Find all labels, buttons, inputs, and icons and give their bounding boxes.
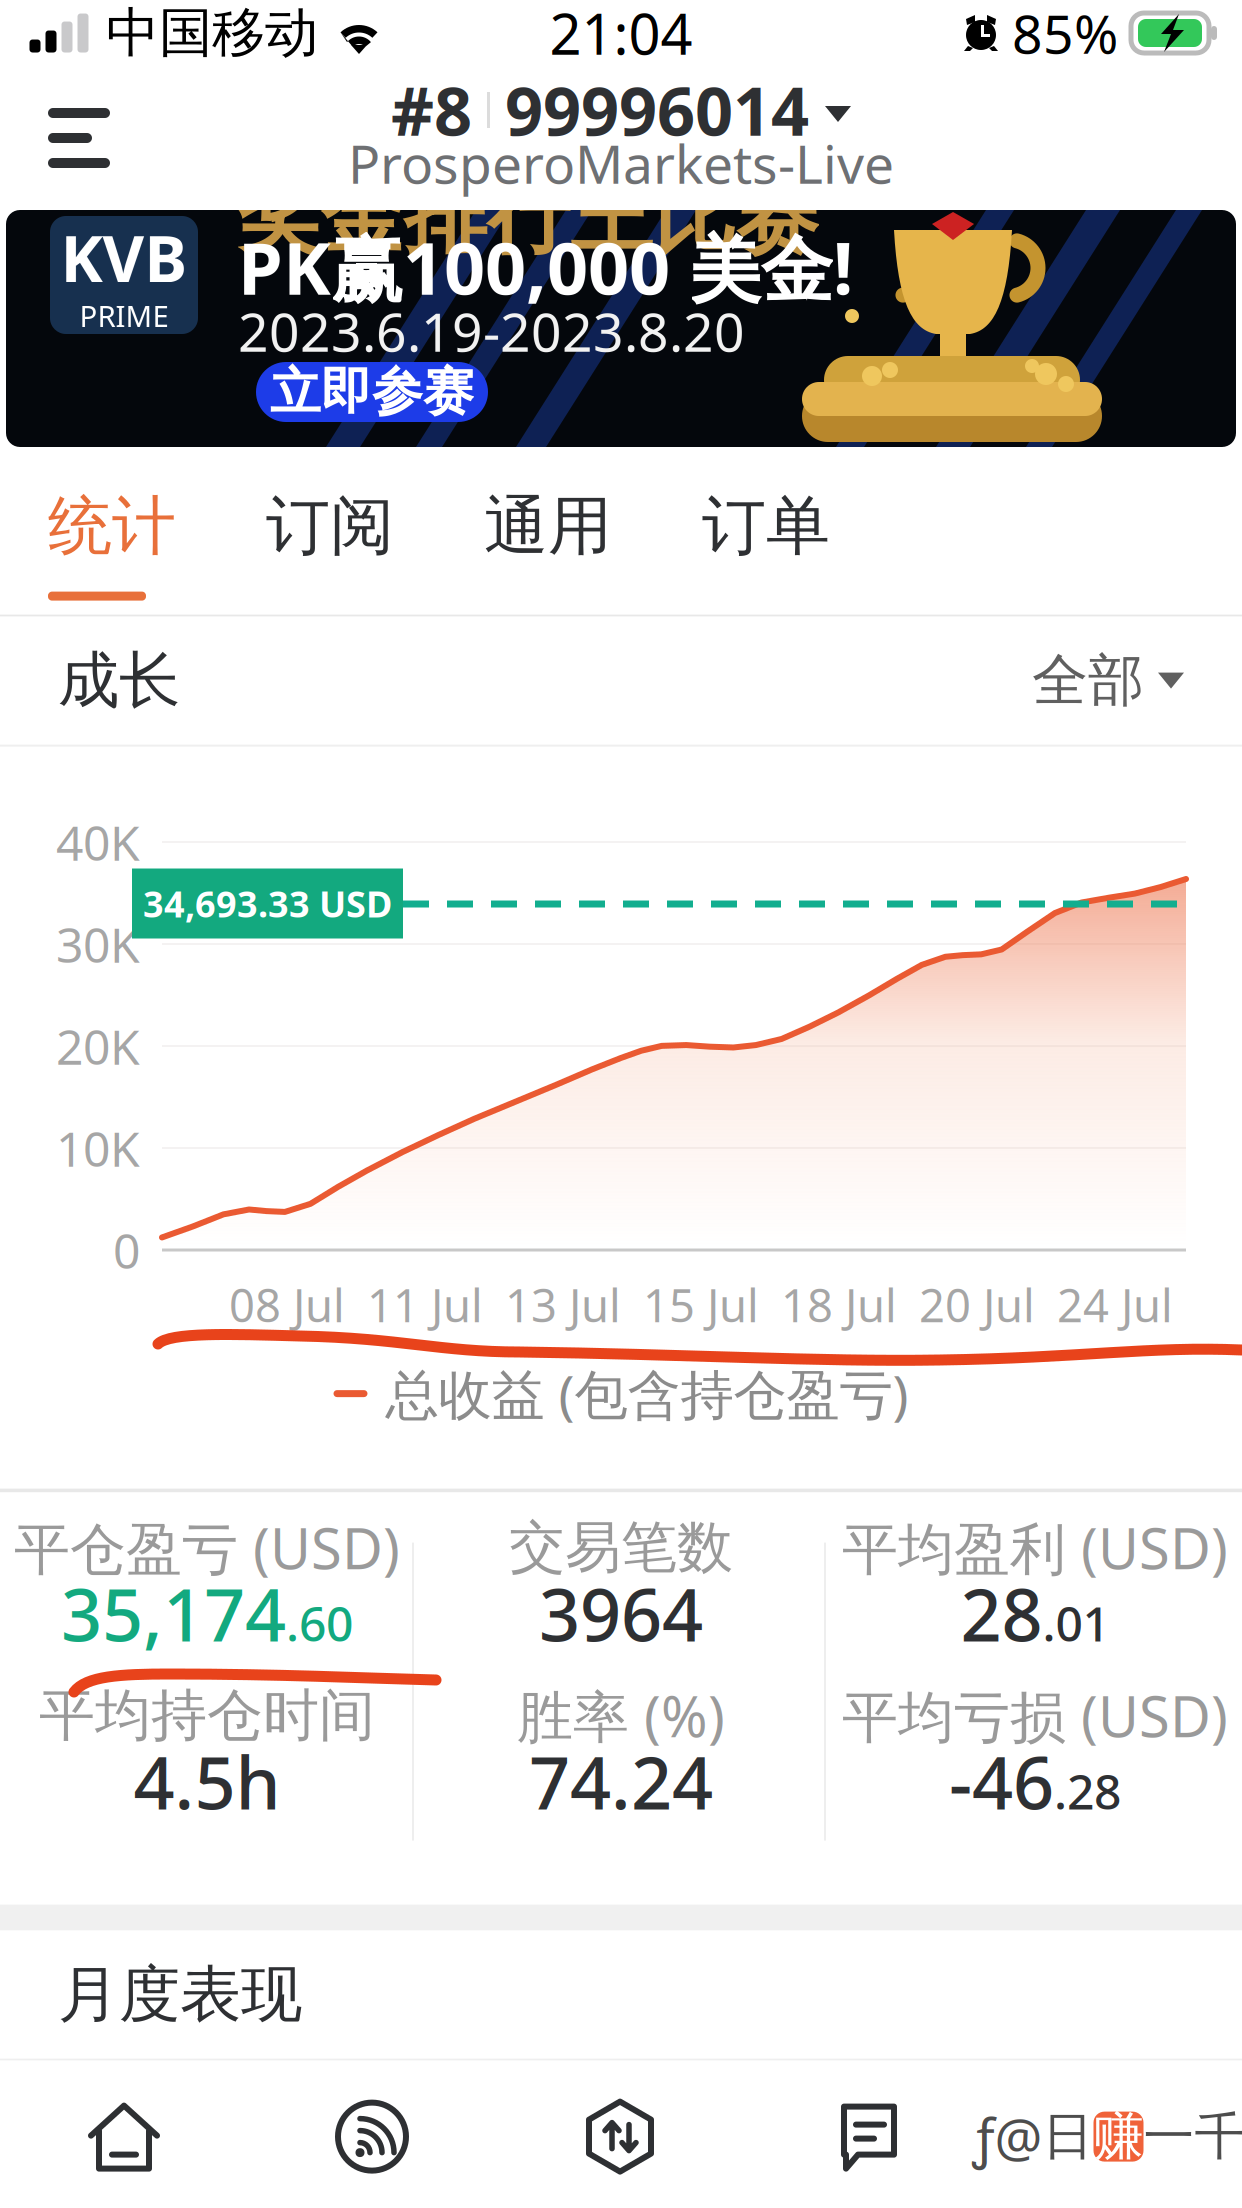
staticText: 中国移动 bbox=[106, 0, 318, 66]
staticText: 成长 bbox=[58, 643, 180, 718]
button[interactable]: 全部 bbox=[1032, 638, 1184, 723]
staticText: 13 Jul bbox=[505, 1274, 621, 1335]
button[interactable]: Profile bbox=[992, 2061, 1242, 2208]
staticText: 一 bbox=[1143, 2105, 1194, 2168]
staticText: #8 bbox=[391, 66, 472, 154]
button[interactable]: KVB bbox=[0, 210, 1242, 447]
staticText: 月度表现 bbox=[58, 1957, 302, 2032]
staticText: 11 Jul bbox=[367, 1274, 483, 1335]
staticText: 18 Jul bbox=[781, 1274, 897, 1335]
staticText: 34,693.33 USD bbox=[143, 880, 392, 927]
staticText: 10K bbox=[56, 1116, 140, 1180]
staticText: 20K bbox=[56, 1014, 140, 1078]
staticText: 胜率 (%) bbox=[517, 1678, 725, 1753]
staticText: 20 Jul bbox=[919, 1274, 1035, 1335]
staticText: -46 bbox=[949, 1734, 1054, 1829]
staticText: ƒ bbox=[972, 2101, 994, 2172]
staticText: @ bbox=[994, 2101, 1042, 2172]
staticText: 立即参赛 bbox=[270, 361, 474, 423]
staticText: 4.5h bbox=[133, 1734, 280, 1829]
staticText: 全部 bbox=[1032, 646, 1144, 715]
button[interactable]: 订单 bbox=[702, 459, 830, 615]
staticText: 30K bbox=[56, 912, 140, 976]
staticText: 交易笔数 bbox=[509, 1513, 733, 1582]
staticText: 日 bbox=[1042, 2105, 1093, 2168]
staticText: .01 bbox=[1042, 1591, 1109, 1655]
button[interactable]: 统计 bbox=[48, 459, 266, 615]
staticText: .28 bbox=[1054, 1759, 1121, 1823]
staticText: PK赢100,000 美金! bbox=[238, 219, 853, 315]
staticText: 99996014 bbox=[505, 66, 809, 154]
staticText: 15 Jul bbox=[643, 1274, 759, 1335]
staticText: 2023.6.19-2023.8.20 bbox=[238, 296, 745, 366]
staticText: 奖金排行王比赛 bbox=[238, 166, 819, 267]
button[interactable]: #8 bbox=[328, 81, 914, 187]
staticText: 订单 bbox=[702, 487, 830, 566]
staticText: 40K bbox=[56, 810, 140, 874]
button[interactable]: Signals bbox=[248, 2061, 496, 2208]
staticText: KVB bbox=[60, 215, 187, 300]
staticText: 24 Jul bbox=[1057, 1274, 1173, 1335]
button[interactable]: Menu bbox=[0, 82, 150, 194]
button[interactable]: Messages bbox=[744, 2061, 992, 2208]
staticText: 35,174 bbox=[61, 1566, 286, 1661]
button[interactable]: Home bbox=[0, 2061, 248, 2208]
staticText: 21:04 bbox=[549, 0, 692, 70]
staticText: ProsperoMarkets-Live bbox=[348, 128, 894, 198]
staticText: 74.24 bbox=[529, 1734, 713, 1829]
staticText: 总收益 (包含持仓盈亏) bbox=[385, 1358, 908, 1429]
staticText: 平均亏损 (USD) bbox=[842, 1678, 1228, 1753]
staticText: 平仓盈亏 (USD) bbox=[14, 1510, 400, 1585]
staticText: PRIME bbox=[79, 296, 168, 335]
staticText: 统计 bbox=[48, 487, 176, 566]
staticText: 通用 bbox=[484, 487, 612, 566]
staticText: 平均盈利 (USD) bbox=[842, 1510, 1228, 1585]
button[interactable]: Trade bbox=[496, 2061, 744, 2208]
staticText: 28 bbox=[960, 1566, 1042, 1661]
staticText: 3964 bbox=[539, 1566, 703, 1661]
staticText: 0 bbox=[113, 1218, 140, 1282]
staticText: 赚 bbox=[1093, 2105, 1144, 2168]
staticText: 订阅 bbox=[266, 487, 394, 566]
staticText: .60 bbox=[286, 1591, 353, 1655]
staticText: 平均持仓时间 bbox=[39, 1681, 375, 1750]
staticText: 85% bbox=[1012, 0, 1118, 68]
button[interactable]: 订阅 bbox=[266, 459, 484, 615]
staticText: 千 bbox=[1194, 2105, 1242, 2168]
button[interactable]: 通用 bbox=[484, 459, 702, 615]
staticText: 08 Jul bbox=[229, 1274, 345, 1335]
